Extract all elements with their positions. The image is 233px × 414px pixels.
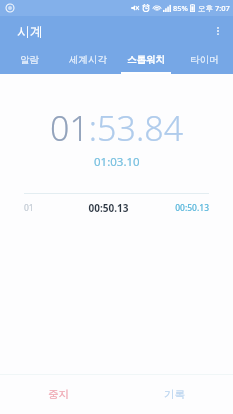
staticText: 중지	[48, 388, 69, 401]
staticText: 01	[24, 202, 64, 214]
button[interactable]: 중지	[0, 375, 116, 414]
staticText: 85%	[173, 3, 188, 13]
button[interactable]: More options	[203, 16, 233, 46]
staticText: 00:50.13	[153, 202, 209, 214]
staticText: 스톱워치	[127, 54, 165, 66]
staticText: 시계	[17, 23, 43, 39]
button[interactable]: 01	[0, 194, 233, 222]
staticText: 세계시각	[69, 54, 107, 66]
staticText: 타이머	[190, 54, 219, 66]
button[interactable]: 알람	[0, 46, 59, 74]
staticText: 기록	[164, 388, 185, 401]
staticText: 알람	[20, 54, 39, 66]
staticText: 오후 7:07	[198, 3, 230, 13]
button[interactable]: 타이머	[175, 46, 233, 74]
button[interactable]: 세계시각	[59, 46, 117, 74]
button[interactable]: 스톱워치	[117, 46, 175, 74]
staticText: 00:50.13	[64, 201, 153, 215]
staticText: 01:53.84	[50, 105, 184, 151]
staticText: 01:03.10	[94, 154, 140, 170]
button[interactable]: 기록	[116, 375, 233, 414]
